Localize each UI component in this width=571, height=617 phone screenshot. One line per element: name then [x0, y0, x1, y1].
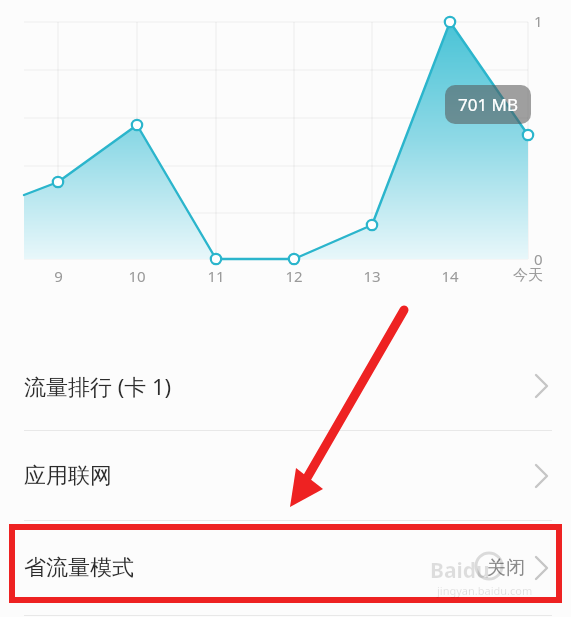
button[interactable]: 应用联网: [0, 431, 571, 520]
button[interactable]: 省流量模式: [0, 521, 571, 615]
staticText: jingyan.baidu.com: [437, 583, 533, 598]
staticText: 关闭: [487, 556, 525, 580]
staticText: 今天: [513, 266, 543, 285]
staticText: 省流量模式: [24, 554, 134, 582]
staticText: 应用联网: [24, 462, 112, 490]
staticText: 14: [441, 266, 459, 286]
staticText: 13: [363, 266, 381, 286]
staticText: Baidu: [430, 556, 490, 585]
staticText: 流量排行 (卡 1): [24, 371, 172, 401]
button[interactable]: 流量排行 (卡 1): [0, 341, 571, 430]
staticText: 0: [534, 249, 543, 269]
staticText: 11: [207, 266, 225, 286]
staticText: 10: [128, 266, 146, 286]
staticText: 9: [54, 266, 63, 286]
staticText: 12: [285, 266, 303, 286]
staticText: 701 MB: [458, 93, 519, 116]
staticText: 1: [534, 11, 543, 31]
